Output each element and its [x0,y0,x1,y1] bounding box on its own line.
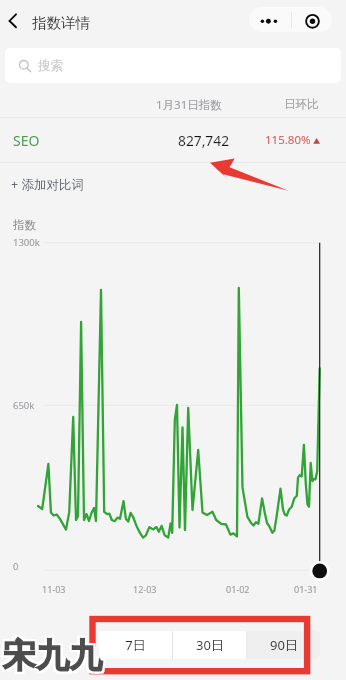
staticText: 宋九九 [1,637,100,679]
button[interactable]: + 添加对比词 [0,163,346,205]
staticText: 7日 [125,636,146,654]
button[interactable]: 30日 [173,631,246,659]
staticText: + 添加对比词 [11,176,84,193]
staticText: 827,742 [178,131,230,150]
button[interactable]: 7日 [99,631,172,659]
staticText: 宋九九 [1,633,100,675]
staticText: 650k [13,399,35,412]
staticText: 宋九九 [5,637,104,679]
button[interactable]: Back [0,8,26,34]
staticText: 12-03 [133,583,157,595]
staticText: 01-31 [294,583,318,595]
staticText: 1300k [13,236,40,249]
staticText: 90日 [270,636,298,654]
button[interactable]: 90日 [247,631,320,659]
button[interactable]: More options [249,7,291,32]
staticText: 30日 [196,636,224,654]
staticText: 搜索 [38,58,63,74]
staticText: 指数详情 [32,14,90,32]
staticText: 日环比 [284,97,319,111]
staticText: 1月31日指数 [156,97,222,113]
staticText: 宋九九 [5,633,104,675]
button[interactable]: 搜索 [5,48,341,83]
staticText: 01-02 [226,583,250,595]
staticText: 宋九九 [3,635,102,677]
staticText: 指数 [13,218,36,232]
staticText: SEO [13,131,40,150]
button[interactable]: Close mini program [292,7,332,32]
staticText: 0 [13,560,19,573]
staticText: 11-03 [42,583,66,595]
staticText: 115.80% [265,132,311,148]
button[interactable]: SEO [0,118,346,162]
